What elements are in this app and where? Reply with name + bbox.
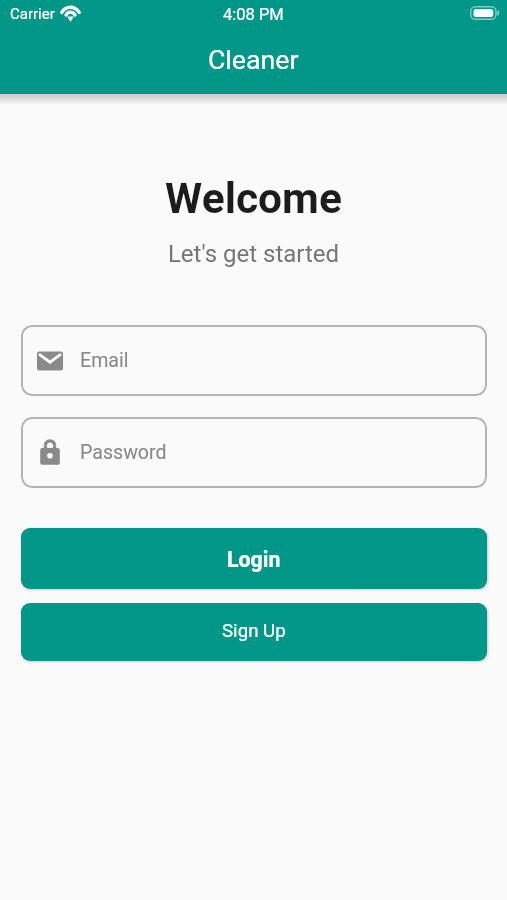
staticText: Sign Up	[222, 620, 286, 642]
staticText: Password	[80, 441, 167, 464]
staticText: Login	[227, 547, 281, 572]
staticText: Cleaner	[208, 44, 299, 75]
button[interactable]: Sign Up	[21, 603, 487, 661]
staticText: Carrier	[10, 5, 55, 23]
other: Email	[37, 349, 63, 373]
staticText: Welcome	[0, 174, 507, 224]
other: Password	[37, 441, 63, 465]
button[interactable]: Password	[21, 417, 487, 488]
staticText: Let's get started	[0, 240, 507, 268]
staticText: 4:08 PM	[223, 5, 284, 24]
button[interactable]: Login	[21, 528, 487, 589]
staticText: Email	[80, 349, 129, 372]
button[interactable]: Email	[21, 325, 487, 396]
